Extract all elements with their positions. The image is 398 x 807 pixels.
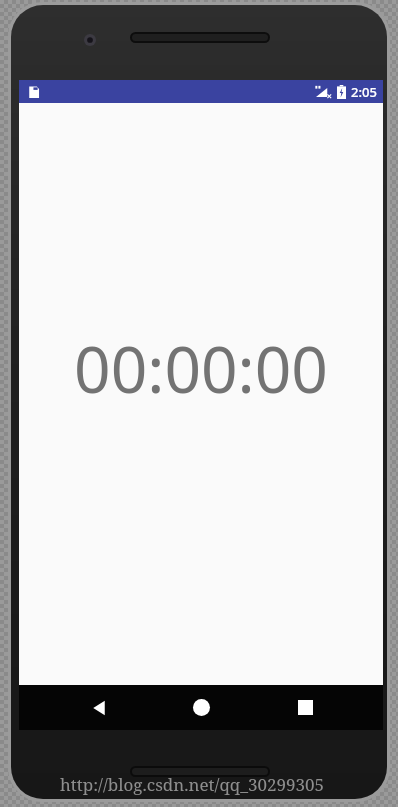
button[interactable]: Home: [177, 685, 225, 730]
button[interactable]: 00:00:00: [74, 325, 328, 412]
button[interactable]: Back: [75, 685, 123, 730]
staticText: 2:05: [351, 83, 377, 101]
button[interactable]: Recent apps: [281, 685, 329, 730]
staticText: http://blog.csdn.net/qq_30299305: [60, 773, 325, 796]
other: Storage notification: [27, 85, 41, 99]
